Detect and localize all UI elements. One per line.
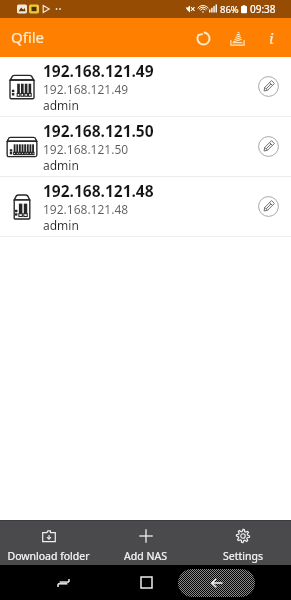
staticText: 192.168.121.49 (43, 81, 129, 97)
button[interactable]: 192.168.121.48 (0, 177, 291, 237)
button[interactable]: Back (178, 565, 255, 600)
button[interactable]: 192.168.121.50 (0, 117, 291, 177)
staticText: admin (43, 157, 79, 173)
staticText: Download folder (7, 549, 90, 563)
staticText: Settings (223, 549, 263, 563)
staticText: 86% (220, 3, 239, 16)
button[interactable]: Edit (246, 177, 291, 236)
button[interactable]: Information (254, 21, 288, 55)
staticText: 192.168.121.50 (43, 120, 154, 141)
button[interactable]: Recents (39, 565, 87, 600)
button[interactable]: Edit (246, 117, 291, 176)
staticText: 192.168.121.48 (43, 180, 154, 201)
staticText: 09:38 (250, 2, 276, 16)
button[interactable]: Download folder (0, 521, 97, 565)
button[interactable]: Edit (246, 57, 291, 116)
button[interactable]: Home (122, 565, 170, 600)
staticText: 192.168.121.48 (43, 201, 129, 217)
button[interactable]: Add NAS (97, 521, 194, 565)
button[interactable]: Settings (194, 521, 291, 565)
staticText: admin (43, 97, 79, 113)
staticText: admin (43, 217, 79, 233)
button[interactable]: Transfer status (220, 21, 254, 55)
staticText: i (269, 28, 274, 48)
button[interactable]: 192.168.121.49 (0, 57, 291, 117)
staticText: 192.168.121.50 (43, 141, 129, 157)
button[interactable]: Refresh (186, 21, 220, 55)
staticText: 192.168.121.49 (43, 60, 154, 81)
staticText: Qfile (11, 27, 45, 47)
staticText: Add NAS (124, 549, 167, 563)
